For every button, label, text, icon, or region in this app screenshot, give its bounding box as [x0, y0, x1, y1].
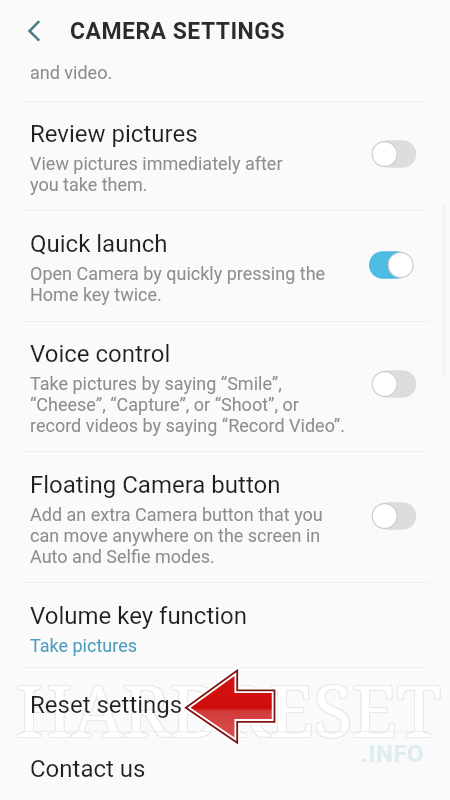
staticText: Reset settings: [30, 692, 183, 719]
staticText: Volume key function: [30, 603, 248, 630]
staticText: Add an extra Camera button that you can …: [30, 505, 323, 568]
staticText: HARDRESET: [16, 662, 441, 759]
staticText: Floating Camera button: [30, 472, 281, 499]
button[interactable]: [0, 321, 450, 451]
staticText: View pictures immediately after you take…: [30, 154, 283, 196]
button[interactable]: [0, 210, 450, 321]
staticText: Review pictures: [30, 121, 198, 148]
staticText: HARDRESET: [15, 660, 440, 757]
staticText: Take pictures: [30, 636, 137, 657]
staticText: Quick launch: [30, 231, 168, 258]
button[interactable]: Off: [364, 364, 426, 404]
staticText: Open Camera by quickly pressing the Home…: [30, 264, 326, 306]
staticText: HARDRESET: [16, 661, 441, 758]
button[interactable]: On: [364, 245, 426, 285]
staticText: .INFO: [361, 740, 425, 768]
staticText: and video.: [30, 63, 113, 84]
staticText: Contact us: [30, 756, 146, 783]
staticText: CAMERA SETTINGS: [70, 18, 285, 45]
staticText: HARDRESET: [15, 661, 440, 758]
button[interactable]: Back: [10, 8, 54, 52]
staticText: HARDRESET: [17, 661, 442, 758]
button[interactable]: Off: [364, 134, 426, 174]
button[interactable]: [0, 101, 450, 210]
button[interactable]: [0, 451, 450, 582]
staticText: HARDRESET: [15, 662, 440, 759]
staticText: HARDRESET: [16, 660, 441, 757]
button[interactable]: [0, 582, 450, 667]
staticText: Voice control: [30, 341, 171, 368]
staticText: Take pictures by saying “Smile”, “Cheese…: [30, 374, 345, 437]
button[interactable]: [0, 667, 450, 731]
button[interactable]: Off: [364, 496, 426, 536]
button[interactable]: [0, 731, 450, 800]
staticText: HARDRESET: [17, 662, 442, 759]
staticText: HARDRESET: [17, 660, 442, 757]
